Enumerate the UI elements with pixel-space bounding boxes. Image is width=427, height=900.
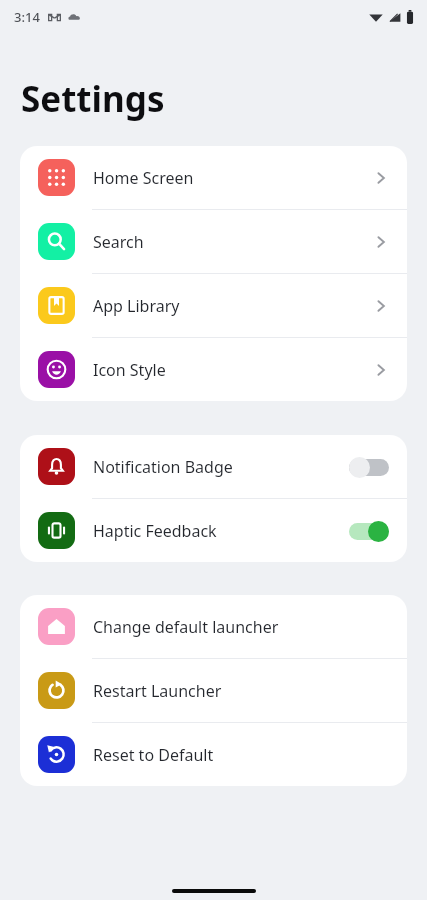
button[interactable]: Reset to Default bbox=[20, 723, 407, 786]
staticText: App Library bbox=[93, 295, 373, 317]
staticText: Restart Launcher bbox=[93, 680, 389, 702]
button[interactable]: App Library bbox=[20, 274, 407, 338]
staticText: Haptic Feedback bbox=[93, 520, 349, 542]
staticText: 3:14 bbox=[14, 8, 40, 26]
staticText: Home Screen bbox=[93, 167, 373, 189]
staticText: Change default launcher bbox=[93, 616, 389, 638]
button[interactable]: Haptic Feedback bbox=[20, 499, 407, 562]
button[interactable]: Home Screen bbox=[20, 146, 407, 210]
button[interactable]: Icon Style bbox=[20, 338, 407, 401]
button[interactable]: On bbox=[349, 520, 389, 542]
staticText: Settings bbox=[21, 75, 165, 123]
staticText: Reset to Default bbox=[93, 744, 389, 766]
button[interactable]: Search bbox=[20, 210, 407, 274]
button[interactable]: Notification Badge bbox=[20, 435, 407, 499]
staticText: Search bbox=[93, 231, 373, 253]
staticText: Notification Badge bbox=[93, 456, 349, 478]
button[interactable]: Restart Launcher bbox=[20, 659, 407, 723]
button[interactable]: Change default launcher bbox=[20, 595, 407, 659]
staticText: Icon Style bbox=[93, 359, 373, 381]
button[interactable]: Off bbox=[349, 456, 389, 478]
